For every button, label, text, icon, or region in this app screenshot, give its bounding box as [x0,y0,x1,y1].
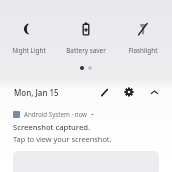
other: Battery saver [79,22,93,36]
staticText: Mon, Jan 15 [14,87,59,98]
button[interactable]: Flashlight [115,16,171,58]
staticText: Battery saver [66,46,106,55]
other: Night Light [22,22,36,36]
staticText: Tap to view your screenshot. [13,134,112,144]
staticText: Android System · now [24,110,87,118]
button[interactable]: Collapse [146,84,162,100]
button[interactable]: Settings [121,84,137,100]
button[interactable]: Edit [96,84,112,100]
staticText: Screenshot captured. [13,122,91,132]
button[interactable]: Battery saver [58,16,114,58]
button[interactable]: Night Light [1,16,57,58]
button[interactable]: Android System · now [0,110,172,172]
other: Flashlight [136,22,150,36]
staticText: Night Light [12,46,46,55]
staticText: Flashlight [128,46,158,55]
